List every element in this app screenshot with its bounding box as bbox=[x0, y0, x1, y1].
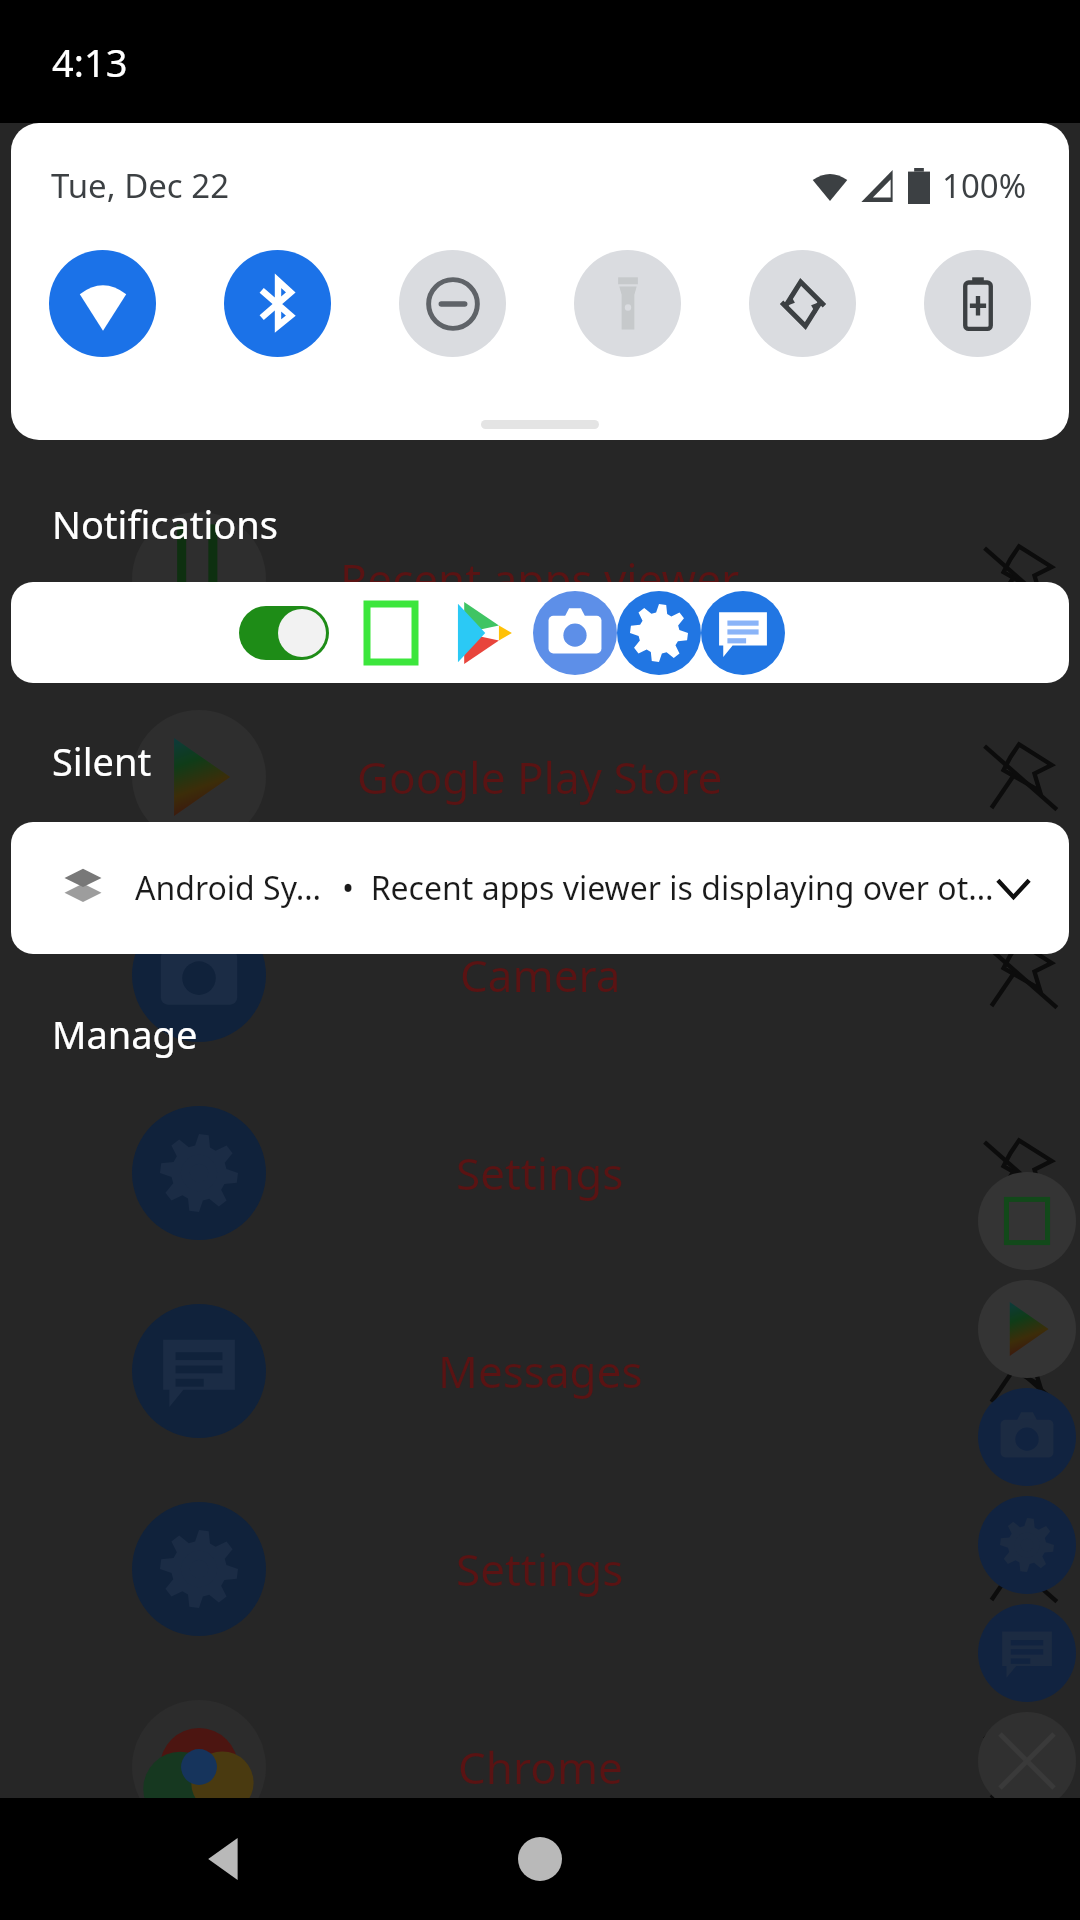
button[interactable]: Wi-Fi bbox=[49, 250, 156, 357]
staticText: Silent bbox=[52, 735, 152, 787]
staticText: 100% bbox=[942, 163, 1027, 208]
button[interactable]: Android Sy… bbox=[11, 822, 1069, 954]
button[interactable] bbox=[11, 582, 1069, 683]
staticText: Chrome bbox=[458, 1737, 623, 1797]
staticText: Tue, Dec 22 bbox=[51, 163, 230, 208]
staticText: Manage bbox=[52, 1008, 198, 1060]
button[interactable]: Expand notification bbox=[994, 856, 1033, 920]
button[interactable]: Battery Saver bbox=[924, 250, 1031, 357]
button[interactable]: Do Not Disturb bbox=[399, 250, 506, 357]
button[interactable]: Home bbox=[485, 1804, 595, 1914]
staticText: 4:13 bbox=[52, 36, 128, 88]
button[interactable]: Bluetooth bbox=[224, 250, 331, 357]
staticText: Settings bbox=[456, 1539, 624, 1599]
button[interactable]: Auto rotate bbox=[749, 250, 856, 357]
staticText: Camera bbox=[460, 945, 621, 1005]
staticText: Google Play Store bbox=[357, 747, 723, 807]
staticText: • Recent apps viewer is displaying over … bbox=[342, 866, 994, 910]
button[interactable]: Back bbox=[170, 1804, 280, 1914]
staticText: Settings bbox=[456, 1143, 624, 1203]
staticText: Android Sy… bbox=[135, 866, 322, 910]
staticText: Notifications bbox=[52, 498, 279, 550]
button[interactable]: Flashlight bbox=[574, 250, 681, 357]
staticText: Recent apps viewer bbox=[340, 549, 740, 609]
staticText: Messages bbox=[438, 1341, 643, 1401]
